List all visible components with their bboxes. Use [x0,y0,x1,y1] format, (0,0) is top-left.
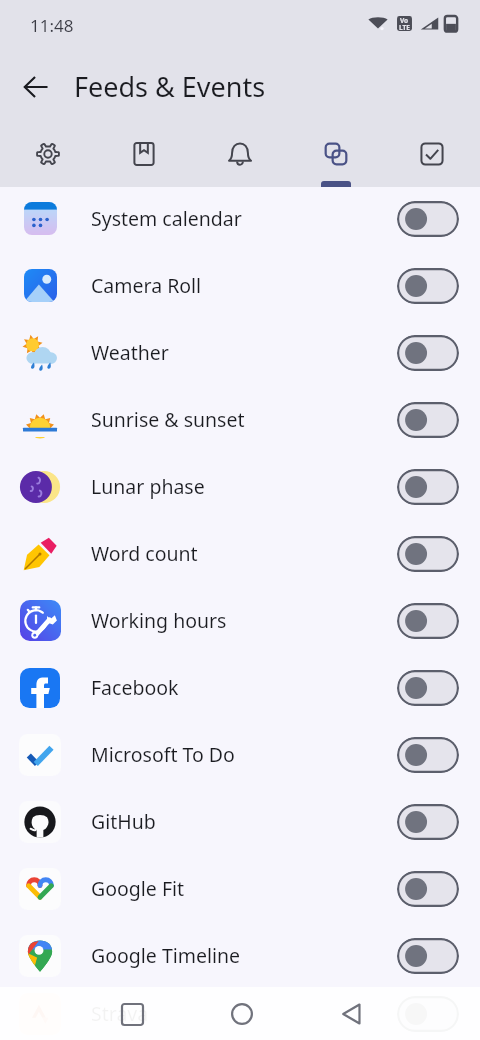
button[interactable]: Sunrise & sunset [0,388,480,455]
staticText: Word count [91,540,397,567]
button[interactable]: Toggle [397,996,459,1032]
staticText: Lunar phase [91,473,397,500]
staticText: Google Fit [91,875,397,902]
button[interactable]: Facebook [0,656,480,723]
button[interactable]: Home [218,990,266,1038]
staticText: Camera Roll [91,272,397,299]
button[interactable]: Toggle [397,536,459,572]
staticText: Sunrise & sunset [91,406,397,433]
staticText: LTE [399,23,410,31]
staticText: Weather [91,339,397,366]
staticText: GitHub [91,808,397,835]
button[interactable]: Settings [0,125,96,187]
button[interactable]: Toggle [397,737,459,773]
button[interactable]: Tasks [384,125,480,187]
staticText: Microsoft To Do [91,741,397,768]
button[interactable]: Working hours [0,589,480,656]
button[interactable]: GitHub [0,790,480,857]
staticText: Vo [400,16,409,25]
button[interactable]: Word count [0,522,480,589]
button[interactable]: Toggle [397,335,459,371]
button[interactable]: Feeds [288,125,384,187]
staticText: 11:48 [30,14,74,37]
button[interactable]: Toggle [397,938,459,974]
button[interactable]: Back [12,64,60,112]
button[interactable]: Weather [0,321,480,388]
button[interactable]: Bookmarks [96,125,192,187]
staticText: Working hours [91,607,397,634]
button[interactable]: Toggle [397,804,459,840]
button[interactable]: System calendar [0,187,480,254]
button[interactable]: Toggle [397,402,459,438]
button[interactable]: Microsoft To Do [0,723,480,790]
button[interactable]: Strava [0,991,480,1040]
button[interactable]: Camera Roll [0,254,480,321]
button[interactable]: Toggle [397,469,459,505]
button[interactable]: Notifications [192,125,288,187]
button[interactable]: Google Timeline [0,924,480,991]
button[interactable]: Toggle [397,201,459,237]
staticText: Facebook [91,674,397,701]
button[interactable]: Toggle [397,670,459,706]
button[interactable]: Lunar phase [0,455,480,522]
staticText: Strava [91,1000,397,1027]
button[interactable]: Recent apps [108,990,156,1038]
staticText: System calendar [91,205,397,232]
button[interactable]: Toggle [397,603,459,639]
button[interactable]: Back [328,990,376,1038]
staticText: Google Timeline [91,942,397,969]
staticText: Feeds & Events [74,68,266,105]
button[interactable]: Google Fit [0,857,480,924]
button[interactable]: Toggle [397,871,459,907]
button[interactable]: Toggle [397,268,459,304]
